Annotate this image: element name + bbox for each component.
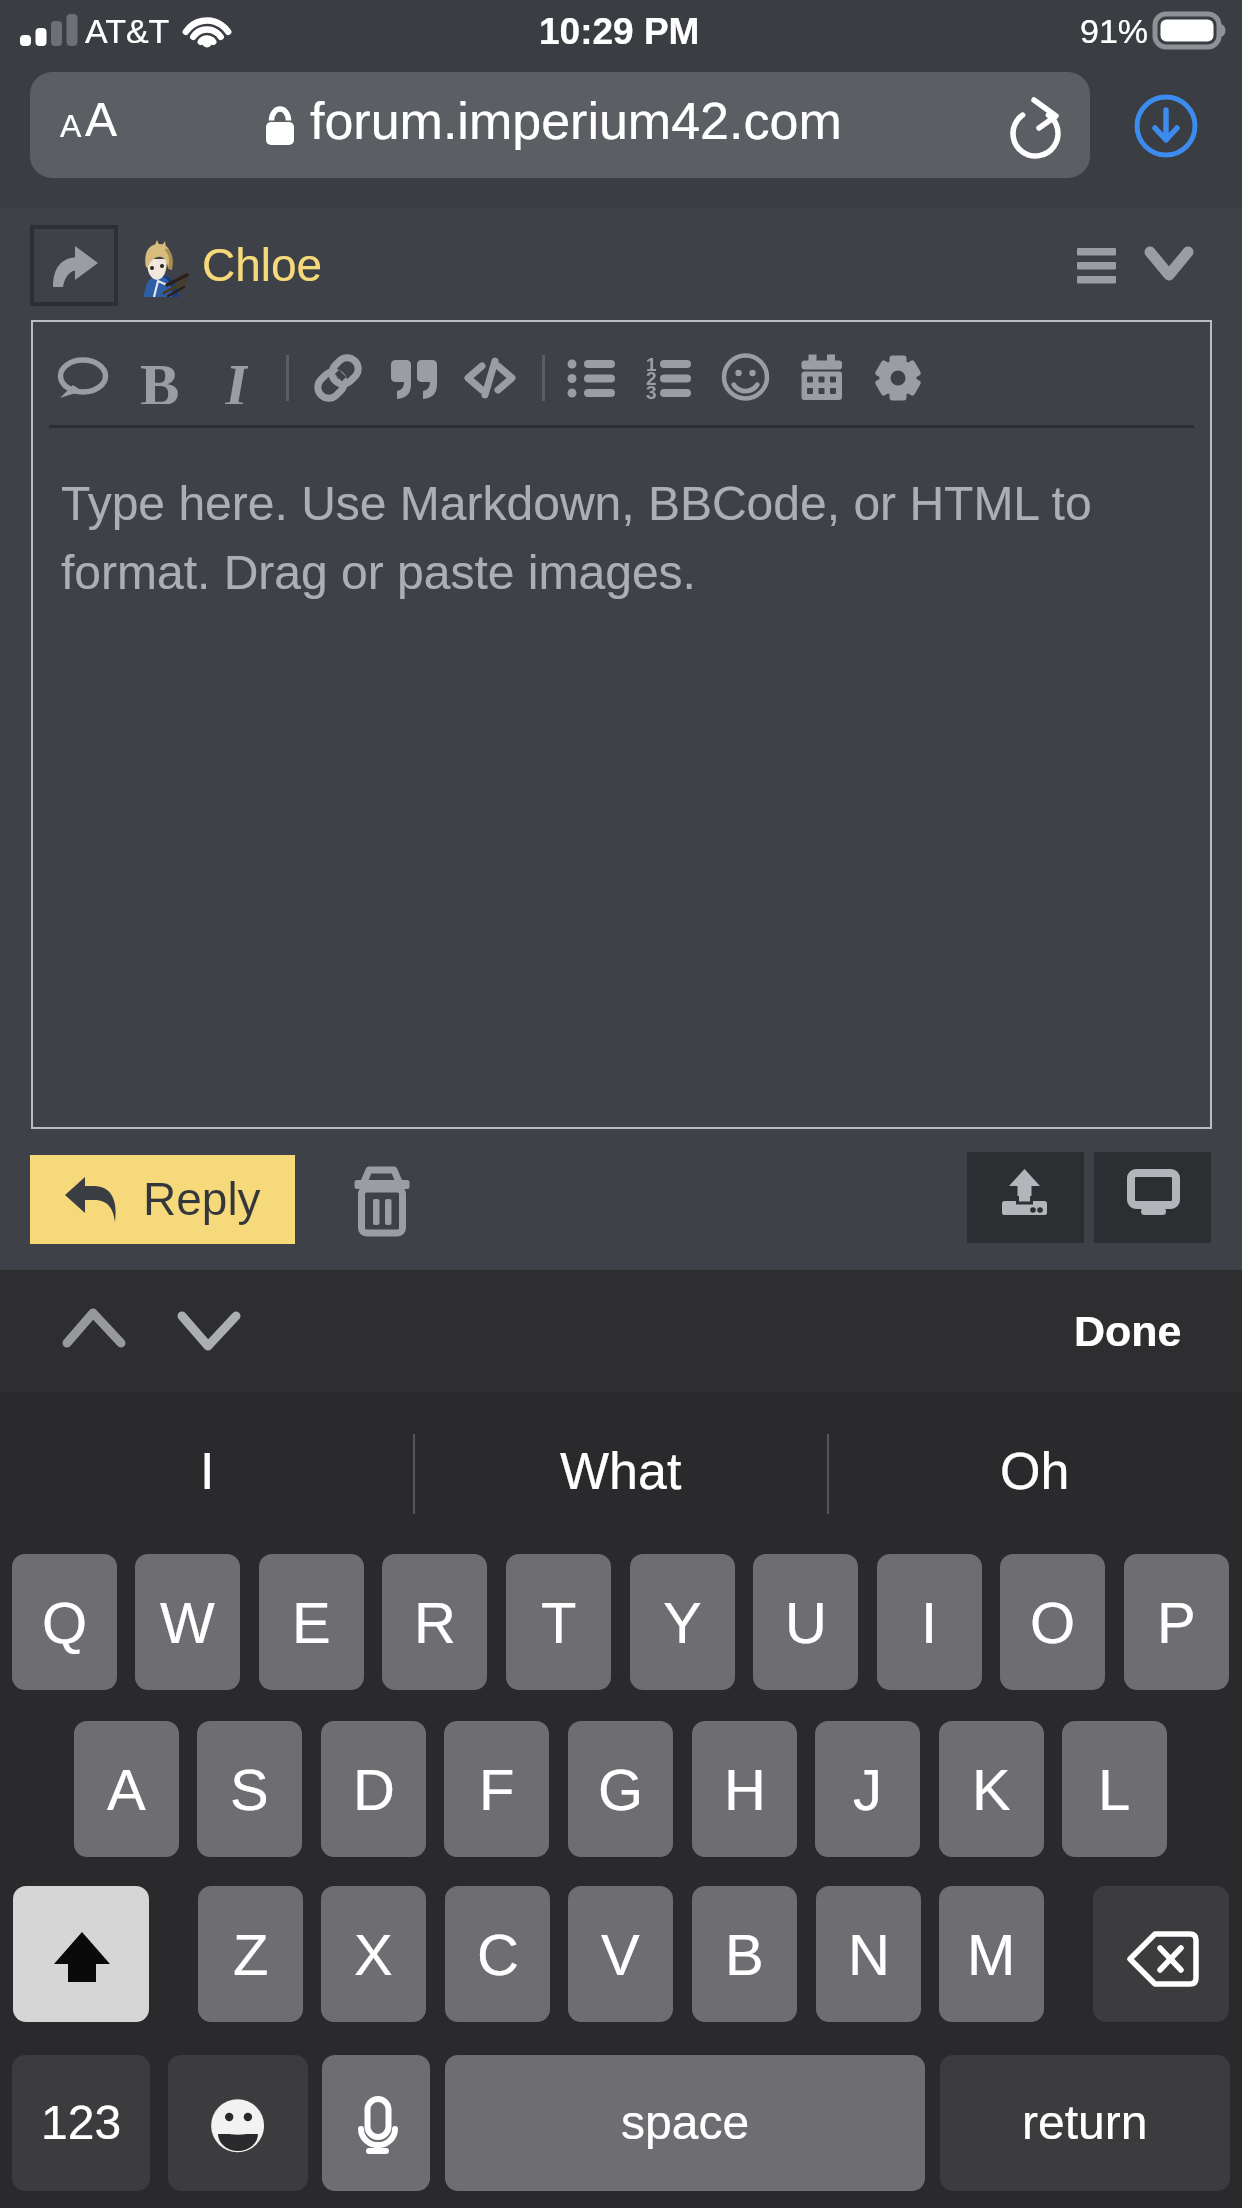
staticText: Z xyxy=(233,1922,269,1987)
button[interactable]: G xyxy=(568,1721,673,1857)
staticText: T xyxy=(541,1590,577,1655)
staticText: S xyxy=(230,1757,269,1822)
staticText: R xyxy=(414,1590,456,1655)
staticText: F xyxy=(479,1757,515,1822)
button[interactable]: Dictation xyxy=(322,2055,430,2191)
button[interactable]: return xyxy=(940,2055,1230,2191)
staticText: B xyxy=(725,1922,764,1987)
button[interactable]: I xyxy=(0,1392,414,1550)
staticText: What xyxy=(560,1442,682,1500)
button[interactable]: V xyxy=(568,1886,673,2022)
staticText: 91% xyxy=(1080,12,1149,50)
button[interactable]: E xyxy=(259,1554,364,1690)
button[interactable]: X xyxy=(321,1886,426,2022)
staticText: V xyxy=(601,1922,640,1987)
button[interactable]: 123 xyxy=(12,2055,150,2191)
button[interactable]: Calendar xyxy=(796,352,848,404)
button[interactable] xyxy=(30,72,1090,178)
button[interactable]: Backspace xyxy=(1093,1886,1229,2022)
staticText: return xyxy=(1022,2096,1148,2150)
button[interactable]: Settings xyxy=(872,352,924,404)
staticText: W xyxy=(160,1590,215,1655)
button[interactable]: A xyxy=(74,1721,179,1857)
button[interactable]: K xyxy=(939,1721,1044,1857)
button[interactable]: Oh xyxy=(828,1392,1242,1550)
button[interactable]: Done xyxy=(1040,1292,1215,1370)
staticText: 3 xyxy=(646,382,657,403)
staticText: K xyxy=(972,1757,1011,1822)
button[interactable]: Next field xyxy=(170,1292,248,1372)
button[interactable]: Previous field xyxy=(55,1292,133,1372)
button[interactable]: Emoji xyxy=(720,352,772,404)
button[interactable]: M xyxy=(939,1886,1044,2022)
staticText: E xyxy=(292,1590,331,1655)
button[interactable]: Y xyxy=(630,1554,735,1690)
button[interactable]: Reply xyxy=(30,1155,295,1244)
staticText: P xyxy=(1157,1590,1196,1655)
staticText: I xyxy=(225,352,248,404)
button[interactable]: Collapse xyxy=(1140,238,1198,294)
staticText: C xyxy=(477,1922,519,1987)
button[interactable]: T xyxy=(506,1554,611,1690)
button[interactable]: R xyxy=(382,1554,487,1690)
button[interactable]: U xyxy=(753,1554,858,1690)
staticText: Type here. Use Markdown, BBCode, or HTML… xyxy=(61,477,1121,599)
button[interactable]: Delete draft xyxy=(340,1154,428,1246)
button[interactable]: I xyxy=(877,1554,982,1690)
button[interactable]: P xyxy=(1124,1554,1229,1690)
staticText: Y xyxy=(663,1590,702,1655)
staticText: O xyxy=(1030,1590,1076,1655)
button[interactable]: Emoji keyboard xyxy=(168,2055,308,2191)
button[interactable]: Desktop site xyxy=(1094,1152,1211,1243)
button[interactable]: D xyxy=(321,1721,426,1857)
button[interactable]: N xyxy=(816,1886,921,2022)
staticText: 1 xyxy=(646,354,657,375)
button[interactable]: Z xyxy=(198,1886,303,2022)
staticText: J xyxy=(853,1757,882,1822)
button[interactable]: Code xyxy=(464,352,516,404)
staticText: 123 xyxy=(41,2096,122,2150)
button[interactable]: L xyxy=(1062,1721,1167,1857)
staticText: G xyxy=(598,1757,644,1822)
staticText: A xyxy=(85,93,118,147)
staticText: B xyxy=(140,352,180,404)
staticText: AT&T xyxy=(85,12,170,50)
button[interactable]: What xyxy=(414,1392,828,1550)
button[interactable]: J xyxy=(815,1721,920,1857)
staticText: Done xyxy=(1074,1307,1182,1355)
button[interactable]: Upload file xyxy=(967,1152,1084,1243)
button[interactable]: W xyxy=(135,1554,240,1690)
button[interactable]: Q xyxy=(12,1554,117,1690)
button[interactable]: S xyxy=(197,1721,302,1857)
button[interactable]: Numbered list xyxy=(643,352,695,404)
button[interactable]: Bullet list xyxy=(566,352,618,404)
button[interactable]: C xyxy=(445,1886,550,2022)
button[interactable]: Italic xyxy=(210,352,262,404)
button[interactable]: Share xyxy=(30,225,118,306)
button[interactable]: O xyxy=(1000,1554,1105,1690)
button[interactable]: Comment xyxy=(57,352,109,404)
button[interactable]: Quote xyxy=(388,352,440,404)
staticText: N xyxy=(848,1922,890,1987)
staticText: D xyxy=(353,1757,395,1822)
staticText: M xyxy=(967,1922,1016,1987)
button[interactable]: H xyxy=(692,1721,797,1857)
button[interactable]: Reload xyxy=(1010,97,1072,159)
staticText: 2 xyxy=(646,368,657,389)
staticText: H xyxy=(724,1757,766,1822)
staticText: Q xyxy=(42,1590,88,1655)
button[interactable]: Bold xyxy=(134,352,186,404)
button[interactable]: space xyxy=(445,2055,925,2191)
staticText: U xyxy=(785,1590,827,1655)
staticText: I xyxy=(921,1590,938,1655)
button[interactable]: Shift xyxy=(13,1886,149,2022)
button[interactable]: F xyxy=(444,1721,549,1857)
button[interactable]: B xyxy=(692,1886,797,2022)
button[interactable]: Menu xyxy=(1066,238,1128,294)
button[interactable]: Downloads xyxy=(1134,94,1198,158)
staticText: Oh xyxy=(1000,1442,1070,1500)
staticText: X xyxy=(354,1922,393,1987)
staticText: I xyxy=(200,1442,215,1500)
button[interactable]: Link xyxy=(312,352,364,404)
staticText: Chloe xyxy=(202,239,323,290)
